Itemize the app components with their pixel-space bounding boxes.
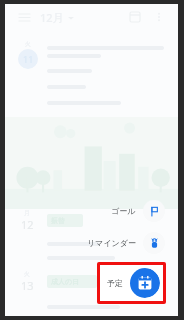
staticText: 成人の日 (51, 277, 80, 286)
staticText: ゴール (111, 206, 136, 216)
staticText: 13 (21, 278, 34, 293)
button[interactable]: Create reminder (81, 231, 166, 255)
button[interactable]: 月 (15, 209, 166, 232)
staticText: リマインダー (87, 238, 136, 248)
staticText: 月 (24, 209, 30, 217)
staticText: 11 (23, 53, 34, 65)
staticText: 火 (25, 40, 31, 48)
button[interactable]: 火 (15, 270, 166, 293)
other: Create event (130, 268, 160, 298)
button[interactable]: 火 (15, 40, 166, 105)
staticText: 火 (24, 270, 30, 278)
staticText: 振替 (51, 216, 65, 225)
button[interactable]: Change view (126, 8, 144, 26)
button[interactable]: 12月 (40, 8, 74, 27)
staticText: 12 (21, 217, 34, 232)
button[interactable]: Open navigation menu (15, 8, 33, 26)
staticText: 予定 (107, 278, 123, 288)
button[interactable]: 予定 (107, 268, 160, 298)
button[interactable]: Create goal (105, 199, 166, 223)
staticText: 12月 (40, 10, 64, 25)
